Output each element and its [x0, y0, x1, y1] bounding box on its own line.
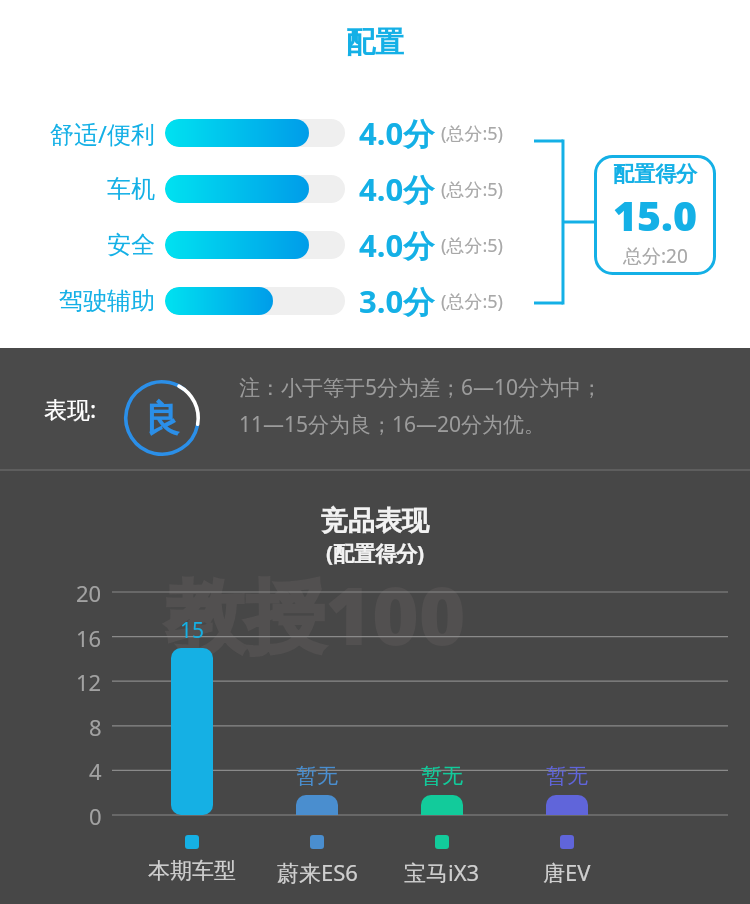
staticText: 12 — [76, 667, 102, 697]
button[interactable]: 唐EV 得分 — [546, 795, 588, 815]
staticText: 教授100 — [165, 559, 466, 668]
staticText: (总分:5) — [441, 289, 503, 314]
staticText: (总分:5) — [441, 121, 503, 146]
button[interactable]: 配置得分 — [594, 155, 716, 275]
button[interactable]: 宝马iX3 — [380, 857, 504, 887]
other: 表现评级 良 — [124, 380, 200, 456]
staticText: 15.0 — [613, 187, 697, 243]
staticText: 配置得分 — [613, 161, 697, 187]
button[interactable]: 舒适/便利 — [0, 111, 750, 155]
button[interactable]: 蔚来ES6 — [255, 857, 379, 887]
staticText: 16 — [76, 623, 102, 653]
staticText: 4 — [89, 756, 102, 786]
staticText: 4.0分 — [359, 168, 435, 210]
staticText: 4.0分 — [359, 224, 435, 266]
staticText: 3.0分 — [359, 280, 435, 322]
staticText: 15 — [180, 616, 205, 645]
button[interactable]: 宝马iX3 得分 — [421, 795, 463, 815]
staticText: 唐EV — [543, 857, 591, 887]
staticText: 良 — [144, 396, 180, 441]
staticText: 驾驶辅助 — [59, 286, 155, 316]
staticText: 11—15分为良；16—20分为优。 — [239, 410, 546, 439]
staticText: 竞品表现 — [0, 504, 750, 538]
staticText: 暂无 — [421, 763, 463, 789]
staticText: (配置得分) — [0, 539, 750, 568]
button[interactable]: 安全 — [0, 223, 750, 267]
button[interactable]: 驾驶辅助 — [0, 279, 750, 323]
staticText: 20 — [76, 578, 102, 608]
button[interactable]: 本期车型 得分 — [171, 648, 213, 815]
button[interactable]: 车机 — [0, 167, 750, 211]
staticText: 配置 — [0, 24, 750, 61]
staticText: 本期车型 — [148, 857, 236, 885]
staticText: 4.0分 — [359, 112, 435, 154]
staticText: 宝马iX3 — [404, 857, 480, 887]
staticText: 安全 — [107, 230, 155, 260]
staticText: 注：小于等于5分为差；6—10分为中； — [239, 373, 603, 402]
staticText: 蔚来ES6 — [277, 857, 358, 887]
staticText: 舒适/便利 — [50, 117, 155, 150]
staticText: 总分:20 — [623, 243, 688, 269]
staticText: 8 — [89, 712, 102, 742]
staticText: 暂无 — [546, 763, 588, 789]
staticText: (总分:5) — [441, 177, 503, 202]
staticText: 0 — [89, 801, 102, 831]
staticText: 暂无 — [296, 763, 338, 789]
button[interactable]: 蔚来ES6 得分 — [296, 795, 338, 815]
staticText: 车机 — [107, 174, 155, 204]
staticText: 表现: — [44, 393, 97, 424]
staticText: (总分:5) — [441, 233, 503, 258]
button[interactable]: 唐EV — [505, 857, 629, 887]
button[interactable]: 本期车型 — [130, 857, 254, 885]
